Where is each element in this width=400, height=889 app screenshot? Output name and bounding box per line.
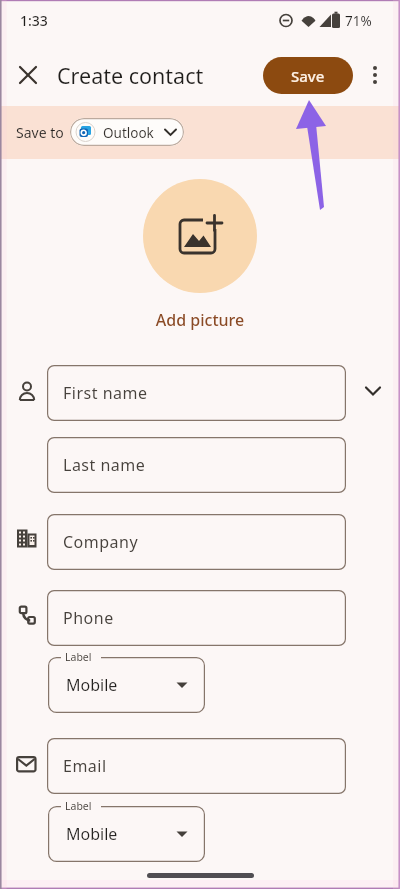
button[interactable] xyxy=(362,61,388,89)
staticText: Save xyxy=(291,66,325,86)
button[interactable] xyxy=(14,61,42,89)
staticText: Company xyxy=(63,531,139,553)
staticText: 71% xyxy=(345,12,372,30)
staticText: Label xyxy=(65,650,92,664)
button[interactable]: Add picture xyxy=(0,309,400,331)
staticText: Last name xyxy=(63,454,146,476)
staticText: Label xyxy=(65,799,92,813)
button[interactable]: Email xyxy=(47,738,346,794)
staticText: First name xyxy=(63,382,148,404)
staticText: Save to xyxy=(16,123,64,142)
button[interactable]: Save xyxy=(263,57,353,94)
staticText: Email xyxy=(63,755,107,777)
button[interactable] xyxy=(143,179,257,293)
staticText: Outlook xyxy=(103,124,154,142)
button[interactable]: Label xyxy=(48,806,205,862)
button[interactable]: Phone xyxy=(47,590,346,646)
staticText: 1:33 xyxy=(20,11,48,30)
staticText: Mobile xyxy=(66,823,118,845)
button[interactable]: First name xyxy=(47,365,346,421)
button[interactable]: Company xyxy=(47,514,346,570)
staticText: Mobile xyxy=(66,674,118,696)
button[interactable]: Label xyxy=(48,657,205,713)
staticText: Create contact xyxy=(57,61,204,90)
button[interactable]: Outlook xyxy=(70,118,184,146)
button[interactable]: Last name xyxy=(47,437,346,493)
button[interactable] xyxy=(360,378,386,404)
staticText: Phone xyxy=(63,607,114,629)
